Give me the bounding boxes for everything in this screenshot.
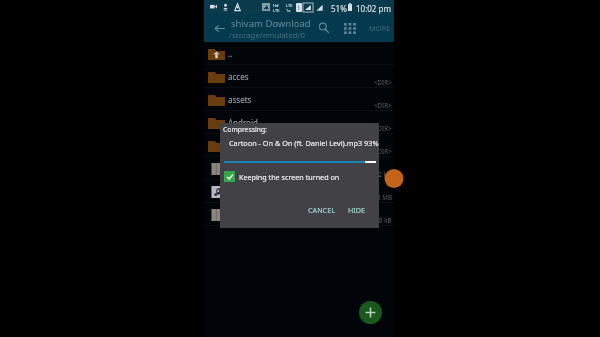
staticText: LTE [286,3,293,8]
staticText: 1x [286,8,291,13]
staticText: acces [228,71,249,82]
button[interactable]: Add [359,301,382,324]
staticText: 8 kB [379,216,392,224]
staticText: backups [228,140,260,151]
staticText: 3.2 MB [372,193,392,201]
button[interactable]: Back [208,16,230,40]
staticText: <DIR> [374,101,392,109]
staticText: 10:02 pm [356,3,391,14]
staticText: CANCEL [308,205,335,215]
staticText: <DIR> [374,124,392,132]
staticText: 51% [331,3,347,14]
button[interactable]: Keeping the screen turned on [224,170,379,183]
staticText: doc.txt [228,163,254,174]
staticText: Android [228,117,258,128]
button[interactable]: assets [204,88,394,111]
button[interactable]: Android [204,111,394,134]
button[interactable]: song.mp3 [204,180,394,203]
button[interactable]: backups [204,134,394,157]
button[interactable]: doc.txt [204,157,394,180]
staticText: Compressing: [223,125,267,134]
staticText: Keeping the screen turned on [239,172,340,182]
button[interactable]: CANCEL [304,201,339,219]
staticText: MORE [369,23,391,33]
staticText: <DIR> [374,78,392,86]
staticText: 12 kB [375,170,392,178]
staticText: LTE [273,8,280,13]
staticText: <DIR> [374,147,392,155]
button[interactable]: Grid view [340,18,360,38]
button[interactable]: MORE [365,18,395,38]
staticText: 1 [297,4,301,12]
staticText: Hd [273,3,279,8]
button[interactable]: notes.txt [204,203,394,226]
staticText: /storage/emulated/0 [229,30,305,41]
staticText: shivam Download [231,17,311,30]
staticText: .. [228,48,233,59]
button[interactable]: Search [314,18,334,38]
button[interactable]: .. [204,42,394,65]
staticText: HIDE [348,205,366,215]
button[interactable]: acces [204,65,394,88]
staticText: assets [228,94,252,105]
button[interactable]: HIDE [344,201,370,219]
staticText: Cartoon - On & On (ft. Daniel Levi).mp3 … [229,138,379,148]
